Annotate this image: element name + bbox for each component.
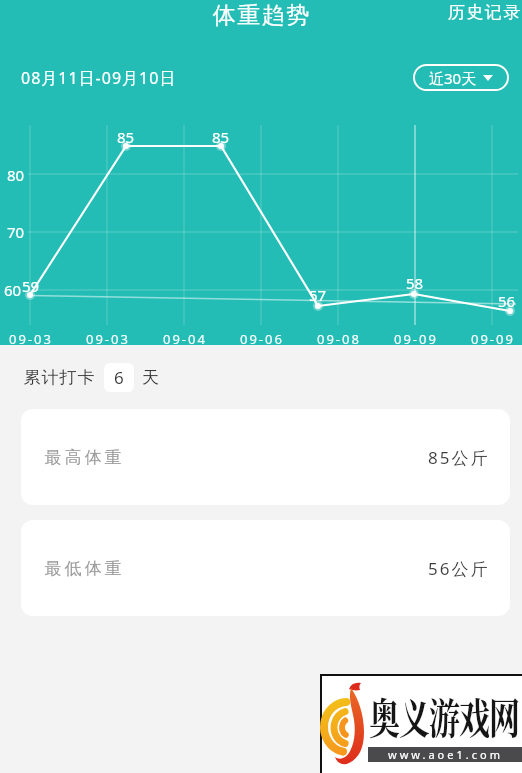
- button[interactable]: 最低体重: [21, 520, 510, 616]
- staticText: 累计打卡: [23, 367, 95, 388]
- button[interactable]: 近30天: [413, 64, 509, 91]
- staticText: 56公斤: [428, 557, 490, 580]
- staticText: 09-09: [394, 330, 438, 348]
- staticText: 09-08: [317, 330, 361, 348]
- staticText: 体重趋势: [212, 1, 310, 30]
- staticText: 09-06: [240, 330, 284, 348]
- staticText: 60: [4, 280, 22, 300]
- staticText: 85: [117, 127, 135, 147]
- staticText: 70: [7, 222, 25, 242]
- staticText: 最低体重: [43, 558, 123, 579]
- staticText: 09-03: [9, 330, 53, 348]
- staticText: 6: [114, 366, 124, 389]
- staticText: www.aoe1.com: [388, 747, 503, 762]
- button[interactable]: 最高体重: [21, 409, 510, 505]
- staticText: 57: [309, 285, 327, 305]
- staticText: 80: [7, 165, 25, 185]
- staticText: 近30天: [429, 68, 477, 88]
- staticText: 天: [142, 367, 159, 388]
- staticText: 85公斤: [428, 446, 490, 469]
- staticText: 09-09: [471, 330, 515, 348]
- staticText: 08月11日-09月10日: [21, 67, 177, 89]
- staticText: 最高体重: [43, 447, 123, 468]
- staticText: 58: [406, 273, 424, 293]
- button[interactable]: 历史记录: [447, 2, 521, 23]
- staticText: 奥义游戏网: [369, 685, 519, 746]
- staticText: 09-04: [163, 330, 207, 348]
- staticText: 56: [498, 291, 516, 311]
- staticText: 59: [22, 276, 40, 296]
- staticText: 09-03: [86, 330, 130, 348]
- staticText: 85: [212, 127, 230, 147]
